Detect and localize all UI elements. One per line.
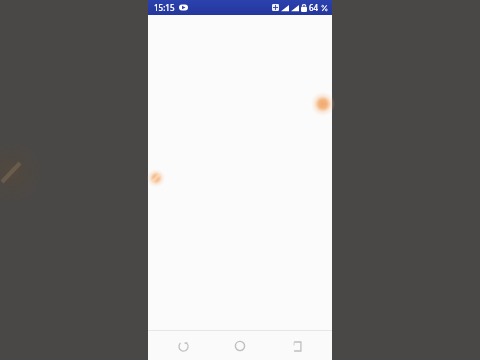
button[interactable]: Edit [148,170,164,186]
button[interactable]: Recents [284,335,310,357]
button[interactable]: Back [170,335,196,357]
button[interactable]: Add [313,93,335,115]
button[interactable]: Home [227,335,253,357]
staticText: 15:15 [154,2,175,13]
staticText: 64 [309,2,319,13]
